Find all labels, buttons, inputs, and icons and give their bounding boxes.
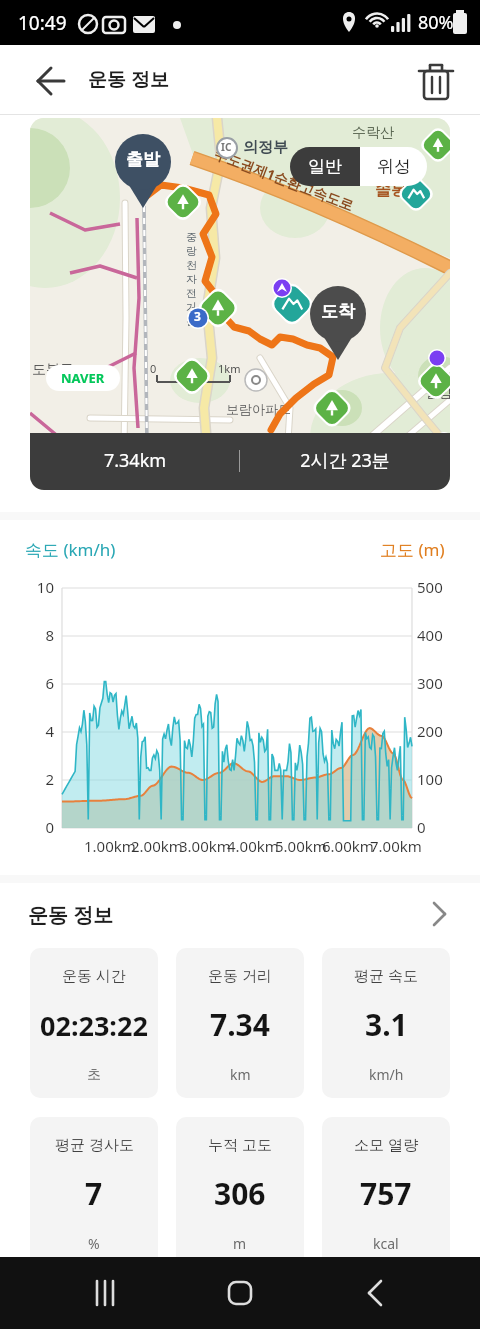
staticText: IC [221,140,232,154]
staticText: 보람아파트 [226,401,291,417]
staticText: 5.00km [275,836,327,856]
staticText: 7.00km [370,836,422,856]
staticText: 8 [20,625,54,645]
staticText: 2시간 23분 [240,448,450,473]
staticText: 4.00km [227,836,279,856]
staticText: % [88,1234,100,1253]
staticText: 초 [87,1066,101,1084]
button[interactable]: 소모 열량 [322,1117,450,1267]
staticText: 속도 (km/h) [25,538,116,561]
staticText: 출발 [114,149,172,170]
staticText: 운동 시간 [62,965,126,985]
staticText: 3 [194,308,201,324]
staticText: 자 [186,272,197,286]
button[interactable] [408,55,464,111]
staticText: 0 [150,361,157,376]
staticText: 도착 [309,301,367,322]
staticText: 757 [360,1173,412,1214]
staticText: 전 [186,286,197,300]
staticText: 의정부 [243,138,288,157]
staticText: 2 [20,769,54,789]
staticText: 고도 (m) [380,538,445,561]
staticText: 02:23:22 [40,1007,148,1044]
staticText: km [230,1065,251,1084]
staticText: 운동 정보 [88,66,169,92]
button[interactable]: 일반 [290,147,360,186]
staticText: 천 [186,258,197,272]
staticText: 6 [20,673,54,693]
button[interactable] [210,1263,270,1323]
staticText: 중 [186,230,197,244]
staticText: 100 [417,769,443,789]
button[interactable]: 운동 정보 [0,899,480,929]
staticText: 평균 경사도 [55,1134,134,1154]
staticText: 4 [20,721,54,741]
button[interactable] [345,1263,405,1323]
staticText: 3.00km [179,836,231,856]
staticText: 운동 거리 [208,965,272,985]
button[interactable]: 평균 경사도 [30,1117,158,1267]
staticText: 평균 속도 [354,965,418,985]
staticText: 500 [417,577,443,597]
staticText: 80% [418,10,454,35]
staticText: 거 [186,300,197,314]
staticText: 7.34 [210,1004,270,1045]
button[interactable]: 운동 거리 [176,948,304,1098]
staticText: 400 [417,625,443,645]
staticText: 2.00km [131,836,183,856]
staticText: 1.00km [84,836,136,856]
staticText: 300 [417,673,443,693]
button[interactable] [0,45,60,115]
staticText: 도봉구 [32,361,74,379]
staticText: 7.34km [30,448,240,473]
staticText: 소모 열량 [354,1134,418,1154]
staticText: 위성 [377,156,411,177]
staticText: 수도권제1순환고속도로 [211,144,357,215]
staticText: 10:49 [18,10,67,36]
button[interactable]: 평균 속도 [322,948,450,1098]
staticText: 306 [214,1173,266,1214]
staticText: 랑 [186,244,197,258]
staticText: 일반 [308,156,342,177]
staticText: 3.1 [365,1004,408,1045]
staticText: 1km [218,361,241,376]
button[interactable] [75,1263,135,1323]
staticText: 6.00km [322,836,374,856]
staticText: 누적 고도 [208,1134,272,1154]
staticText: 솔봉 [375,180,407,200]
staticText: 7 [85,1173,103,1214]
staticText: 0 [417,817,426,837]
staticText: kcal [373,1234,399,1253]
button[interactable]: 위성 [360,147,427,186]
button[interactable]: 운동 시간 [30,948,158,1098]
staticText: 불암 [426,384,450,400]
staticText: 200 [417,721,443,741]
staticText: m [233,1234,247,1253]
staticText: 10 [20,577,54,597]
staticText: 길 [186,314,197,328]
staticText: NAVER [61,369,105,387]
staticText: 운동 정보 [28,901,422,928]
staticText: km/h [369,1065,404,1084]
staticText: 0 [20,817,54,837]
staticText: 수락산 [352,124,394,142]
button[interactable]: 누적 고도 [176,1117,304,1267]
